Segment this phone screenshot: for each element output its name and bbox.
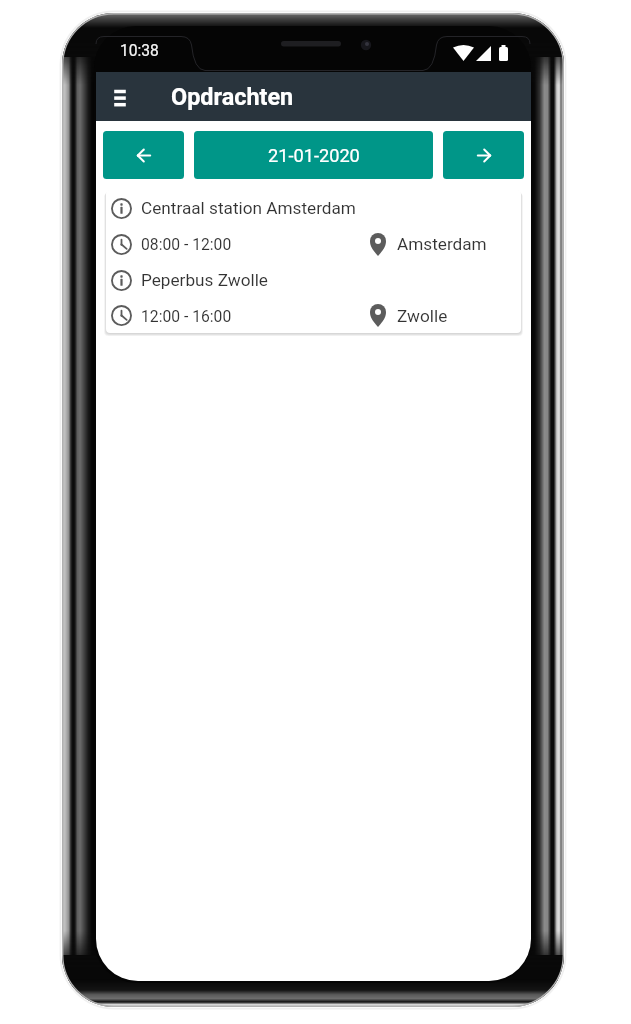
button[interactable]: Next day: [443, 131, 524, 179]
button[interactable]: 21-01-2020: [194, 131, 433, 179]
staticText: Peperbus Zwolle: [141, 270, 268, 290]
staticText: Centraal station Amsterdam: [141, 198, 356, 218]
staticText: Amsterdam: [397, 234, 487, 254]
button[interactable]: Previous day: [103, 131, 184, 179]
staticText: 10:38: [120, 42, 159, 60]
staticText: Opdrachten: [171, 83, 294, 110]
button[interactable]: Open navigation menu: [100, 77, 140, 117]
staticText: 21-01-2020: [268, 145, 360, 166]
button[interactable]: Centraal station Amsterdam: [106, 190, 521, 333]
staticText: 08:00 - 12:00: [141, 235, 232, 253]
staticText: Zwolle: [397, 306, 448, 326]
staticText: 12:00 - 16:00: [141, 307, 232, 325]
